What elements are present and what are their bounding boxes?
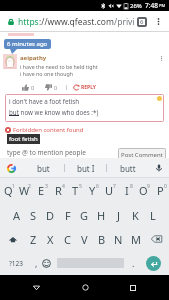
button[interactable]: Recent apps bbox=[120, 275, 146, 300]
staticText: E bbox=[38, 183, 45, 198]
button[interactable]: H bbox=[93, 203, 110, 227]
button[interactable]: M bbox=[127, 227, 144, 251]
staticText: /privi bbox=[114, 16, 135, 28]
button[interactable]: Backspace bbox=[144, 227, 169, 251]
button[interactable]: R bbox=[50, 178, 67, 203]
staticText: butt bbox=[120, 163, 136, 174]
button[interactable]: A bbox=[8, 203, 25, 227]
staticText: i don't have a foot fetish bbox=[9, 97, 80, 105]
button[interactable]: F bbox=[59, 203, 76, 227]
button[interactable]: Google search bbox=[0, 158, 22, 178]
button[interactable]: C bbox=[59, 227, 76, 251]
button[interactable]: but I bbox=[65, 158, 107, 178]
button[interactable]: ?123 bbox=[0, 251, 32, 275]
button[interactable]: Emoji bbox=[40, 251, 53, 275]
button[interactable]: Back bbox=[23, 275, 49, 300]
button[interactable]: REPLY bbox=[73, 84, 96, 91]
staticText: R bbox=[55, 183, 62, 198]
staticText: type @ to mention people bbox=[7, 148, 86, 157]
staticText: https bbox=[18, 16, 39, 28]
other: Secure connection bbox=[7, 18, 15, 26]
button[interactable]: U bbox=[101, 178, 118, 203]
staticText: K bbox=[132, 208, 139, 223]
staticText: 0 bbox=[164, 183, 167, 190]
button[interactable]: Dislike bbox=[45, 84, 58, 91]
staticText: 4 bbox=[62, 183, 65, 190]
staticText: 6 bbox=[96, 183, 99, 190]
staticText: 2 bbox=[28, 183, 31, 190]
button[interactable]: G bbox=[76, 203, 93, 227]
button[interactable]: Comment options bbox=[157, 54, 166, 63]
staticText: H bbox=[97, 208, 106, 223]
staticText: M bbox=[131, 232, 141, 247]
button[interactable]: V bbox=[76, 227, 93, 251]
staticText: 0 bbox=[31, 84, 35, 91]
button[interactable]: S bbox=[25, 203, 42, 227]
button[interactable]: D bbox=[42, 203, 59, 227]
staticText: P bbox=[157, 183, 164, 198]
staticText: X bbox=[47, 232, 54, 247]
staticText: 0 bbox=[54, 84, 58, 91]
staticText: J bbox=[117, 208, 121, 223]
button[interactable]: P bbox=[152, 178, 169, 203]
button[interactable]: E bbox=[33, 178, 50, 203]
staticText: 8 bbox=[130, 183, 133, 190]
button[interactable]: Shift bbox=[0, 227, 25, 251]
button[interactable]: B bbox=[93, 227, 110, 251]
button[interactable]: but bbox=[22, 158, 65, 178]
staticText: W bbox=[19, 183, 30, 198]
staticText: ?123 bbox=[9, 259, 23, 268]
staticText: S bbox=[30, 208, 37, 223]
staticText: now we know who does :*) bbox=[19, 108, 99, 116]
button[interactable]: Y bbox=[84, 178, 101, 203]
staticText: i have no one though bbox=[20, 70, 73, 77]
button[interactable]: Voice input bbox=[149, 158, 169, 178]
button[interactable]: Enter bbox=[138, 251, 169, 275]
staticText: PM bbox=[159, 3, 166, 8]
staticText: Forbidden content found bbox=[13, 126, 84, 134]
button[interactable]: I bbox=[118, 178, 135, 203]
button[interactable]: K bbox=[127, 203, 144, 227]
button[interactable]: More options bbox=[152, 15, 165, 28]
staticText: 9 bbox=[147, 183, 150, 190]
staticText: 7 bbox=[113, 183, 116, 190]
staticText: . bbox=[132, 257, 135, 269]
staticText: aeipathy bbox=[20, 54, 47, 62]
staticText: but bbox=[37, 163, 50, 174]
staticText: V bbox=[81, 232, 88, 247]
staticText: 6 minutes ago bbox=[7, 40, 48, 48]
button[interactable]: N bbox=[110, 227, 127, 251]
button[interactable]: Like bbox=[22, 84, 35, 91]
button[interactable]: J bbox=[110, 203, 127, 227]
button[interactable]: X bbox=[42, 227, 59, 251]
button[interactable]: Q bbox=[0, 178, 16, 203]
staticText: F bbox=[65, 208, 71, 223]
button[interactable]: O bbox=[135, 178, 152, 203]
button[interactable]: Z bbox=[25, 227, 42, 251]
staticText: N bbox=[114, 232, 123, 247]
staticText: , bbox=[35, 257, 38, 269]
staticText: Post Comment bbox=[121, 151, 163, 159]
button[interactable]: L bbox=[144, 203, 161, 227]
button[interactable]: Home bbox=[72, 275, 98, 300]
button[interactable]: Post Comment bbox=[118, 148, 166, 162]
button[interactable]: Tabs bbox=[137, 17, 147, 27]
button[interactable]: butt bbox=[107, 158, 149, 178]
staticText: B bbox=[98, 232, 106, 247]
staticText: Y bbox=[89, 183, 96, 198]
button[interactable]: Comma bbox=[32, 251, 40, 275]
button[interactable]: W bbox=[16, 178, 33, 203]
staticText: 26% bbox=[130, 2, 142, 10]
staticText: U bbox=[105, 183, 114, 198]
staticText: A bbox=[13, 208, 21, 223]
staticText: Z bbox=[30, 232, 37, 247]
staticText: 5 bbox=[79, 183, 82, 190]
button[interactable]: Period bbox=[128, 251, 138, 275]
button[interactable]: T bbox=[67, 178, 84, 203]
staticText: foot fetish bbox=[9, 135, 38, 143]
staticText: 7:48 bbox=[145, 1, 158, 10]
staticText: but I bbox=[77, 163, 95, 174]
staticText: ://www.qfeast.com bbox=[39, 16, 114, 28]
staticText: L bbox=[150, 208, 156, 223]
